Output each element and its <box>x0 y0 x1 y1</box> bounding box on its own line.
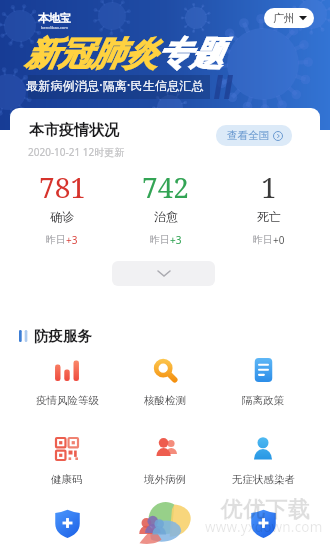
button[interactable]: 确诊 <box>10 168 114 247</box>
staticText: 最新病例消息·隔离·民生信息汇总 <box>26 77 204 93</box>
staticText: 优优下载 <box>220 496 310 524</box>
staticText: +3 <box>170 233 182 247</box>
staticText: 昨日 <box>150 233 170 246</box>
button[interactable]: 无症状感染者 <box>214 434 312 486</box>
button[interactable]: 治愈 <box>114 168 217 247</box>
button[interactable]: 疫苗接种 <box>18 508 116 547</box>
staticText: 专题 <box>157 33 223 75</box>
staticText: 1 <box>261 168 277 206</box>
staticText: 隔离政策 <box>242 394 284 407</box>
button[interactable]: 疫情风险等级 <box>18 355 116 407</box>
button[interactable]: 死亡 <box>217 168 320 247</box>
staticText: +3 <box>66 233 78 247</box>
staticText: 本地宝 <box>38 11 71 25</box>
staticText: 治愈 <box>154 209 178 224</box>
staticText: 健康码 <box>51 473 83 486</box>
staticText: 防疫服务 <box>34 327 92 345</box>
staticText: 境外病例 <box>144 473 186 486</box>
button[interactable]: 境外病例 <box>116 434 214 486</box>
staticText: 昨日 <box>253 233 273 246</box>
staticText: 2020-10-21 12时更新 <box>28 145 125 159</box>
button[interactable]: 隔离政策 <box>214 355 312 407</box>
button[interactable]: 查看全国 <box>216 125 292 146</box>
staticText: 昨日 <box>46 233 66 246</box>
staticText: 无症状感染者 <box>232 473 295 486</box>
staticText: 确诊 <box>50 209 74 224</box>
staticText: bendibao.com <box>41 25 68 30</box>
staticText: 查看全国 <box>227 129 269 142</box>
staticText: 疫情风险等级 <box>36 394 99 407</box>
staticText: 广州 <box>273 11 295 25</box>
staticText: 742 <box>142 168 189 206</box>
button[interactable]: 群体服务 <box>116 508 214 547</box>
staticText: 本市疫情状况 <box>29 121 119 140</box>
staticText: 新冠肺炎 <box>25 33 157 75</box>
button[interactable]: 防疫保障 <box>214 508 312 547</box>
button[interactable]: 核酸检测 <box>116 355 214 407</box>
button[interactable]: 广州 <box>264 8 314 28</box>
button[interactable]: 健康码 <box>18 434 116 486</box>
staticText: +0 <box>273 233 285 247</box>
button[interactable]: 展开更多 <box>112 261 215 286</box>
staticText: 781 <box>39 168 86 206</box>
staticText: 死亡 <box>257 209 281 224</box>
staticText: 核酸检测 <box>144 394 186 407</box>
staticText: www.yxdown.com <box>205 518 323 536</box>
